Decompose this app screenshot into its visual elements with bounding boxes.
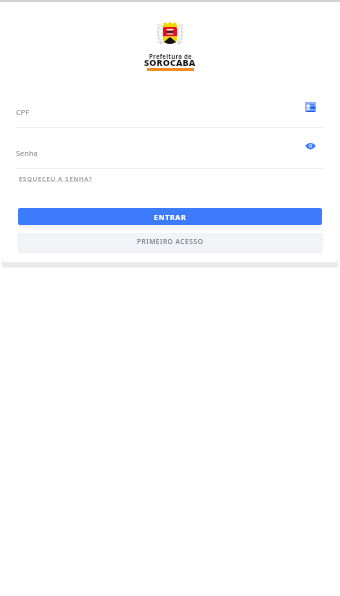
button[interactable]: ENTRAR bbox=[18, 208, 322, 225]
button[interactable]: ESQUECEU A SENHA? bbox=[19, 175, 93, 183]
other: Mostrar senha bbox=[305, 142, 316, 151]
staticText: CPF bbox=[16, 107, 30, 117]
staticText: Senha bbox=[16, 148, 38, 158]
button[interactable]: Mostrar senha bbox=[303, 140, 318, 153]
staticText: Prefeitura de bbox=[149, 52, 192, 60]
button[interactable]: PRIMEIRO ACESSO bbox=[17, 233, 323, 250]
staticText: ESQUECEU A SENHA? bbox=[19, 175, 93, 183]
staticText: SOROCABA bbox=[144, 56, 196, 68]
other: CPF bbox=[305, 102, 316, 112]
staticText: PRIMEIRO ACESSO bbox=[137, 237, 204, 246]
staticText: ENTRAR bbox=[154, 212, 187, 222]
button[interactable]: CPF bbox=[303, 100, 318, 113]
